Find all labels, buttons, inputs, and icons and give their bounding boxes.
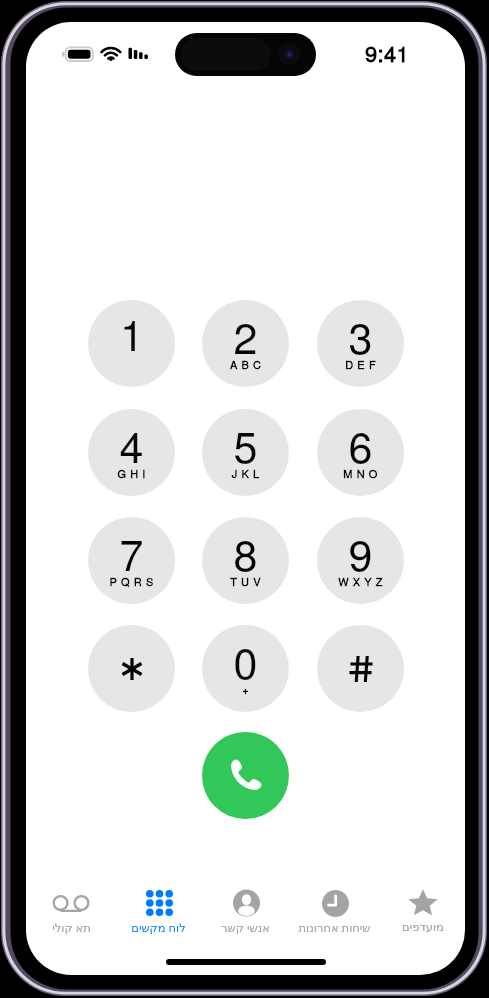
- staticText: 0: [202, 630, 289, 692]
- staticText: DEF: [319, 356, 404, 372]
- staticText: 1: [120, 302, 144, 364]
- button[interactable]: [317, 625, 404, 712]
- staticText: JKL: [204, 465, 289, 481]
- staticText: TUV: [204, 573, 289, 589]
- staticText: MNO: [319, 465, 404, 481]
- button[interactable]: 4: [88, 409, 175, 496]
- staticText: 3: [317, 305, 404, 367]
- button[interactable]: 9: [317, 517, 404, 604]
- staticText: WXYZ: [319, 573, 404, 589]
- staticText: 4: [88, 414, 175, 476]
- button[interactable]: 3: [317, 300, 404, 387]
- button[interactable]: שיחות אחרונות: [291, 888, 378, 948]
- staticText: 9:41: [365, 37, 410, 63]
- button[interactable]: [88, 625, 175, 712]
- button[interactable]: לוח מקשים: [115, 888, 202, 948]
- staticText: מועדפים: [402, 920, 444, 933]
- staticText: 7: [88, 522, 175, 584]
- staticText: 9: [317, 522, 404, 584]
- staticText: שיחות אחרונות: [298, 920, 371, 936]
- button[interactable]: 8: [202, 517, 289, 604]
- staticText: +: [204, 681, 289, 697]
- staticText: 5: [202, 414, 289, 476]
- staticText: 2: [202, 305, 289, 367]
- button[interactable]: 1: [88, 300, 175, 387]
- staticText: ABC: [204, 356, 289, 372]
- button[interactable]: 2: [202, 300, 289, 387]
- button[interactable]: 7: [88, 517, 175, 604]
- staticText: PQRS: [90, 573, 175, 589]
- staticText: 8: [202, 522, 289, 584]
- staticText: תא קולי: [52, 920, 91, 936]
- button[interactable]: Call: [202, 732, 289, 819]
- staticText: GHI: [90, 465, 175, 481]
- button[interactable]: אנשי קשר: [202, 888, 289, 948]
- staticText: 6: [317, 414, 404, 476]
- staticText: לוח מקשים: [131, 920, 186, 936]
- button[interactable]: תא קולי: [27, 888, 114, 948]
- staticText: אנשי קשר: [221, 920, 270, 936]
- button[interactable]: מועדפים: [379, 888, 465, 948]
- button[interactable]: 5: [202, 409, 289, 496]
- button[interactable]: 6: [317, 409, 404, 496]
- button[interactable]: 0: [202, 625, 289, 712]
